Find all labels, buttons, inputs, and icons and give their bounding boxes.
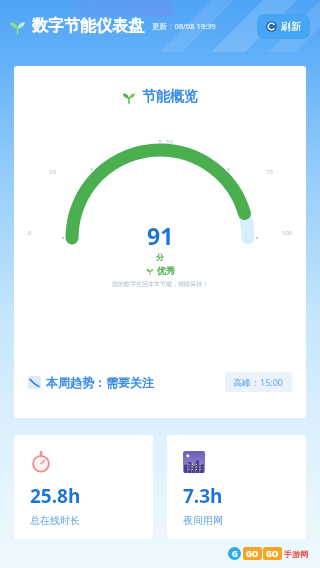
staticText: 25.8h [30, 483, 81, 509]
staticText: 100 [282, 229, 293, 237]
staticText: GO [266, 548, 279, 559]
staticText: 7.3h [183, 483, 223, 509]
other: Sprout [9, 18, 26, 35]
staticText: 91 [147, 220, 174, 251]
other: Trend chart [28, 376, 41, 389]
button[interactable]: Trend chart [28, 375, 154, 390]
other: Sprout [146, 267, 154, 275]
other: Refresh [266, 21, 277, 32]
staticText: 节能概览 [142, 88, 198, 106]
staticText: 高峰：15:00 [233, 376, 284, 388]
staticText: 您的数字生活非常节能，继续保持！ [112, 280, 208, 288]
button[interactable]: 高峰：15:00 [225, 372, 292, 392]
button[interactable]: Refresh [257, 14, 310, 39]
staticText: 75 [266, 168, 273, 176]
other: Night usage [183, 451, 205, 473]
button[interactable]: Online duration [14, 435, 153, 539]
staticText: 分 [156, 252, 164, 262]
staticText: 夜间用网 [183, 514, 223, 527]
other: Sprout [122, 90, 136, 104]
staticText: 优秀 [157, 265, 175, 276]
staticText: G [232, 548, 238, 559]
button[interactable]: Night usage [167, 435, 306, 539]
button[interactable]: Sprout [14, 66, 306, 418]
staticText: 手游网 [284, 549, 308, 559]
staticText: 刷新 [281, 20, 301, 33]
staticText: 本周趋势：需要关注 [46, 375, 154, 390]
staticText: 总在线时长 [30, 514, 80, 527]
staticText: 0 [28, 229, 32, 237]
staticText: GO [246, 548, 259, 559]
staticText: 50 [166, 138, 173, 146]
other: Online duration [30, 451, 52, 473]
staticText: 数字节能仪表盘 [32, 16, 144, 36]
staticText: 25 [49, 168, 56, 176]
staticText: 更新：08/08 19:39 [152, 21, 216, 31]
